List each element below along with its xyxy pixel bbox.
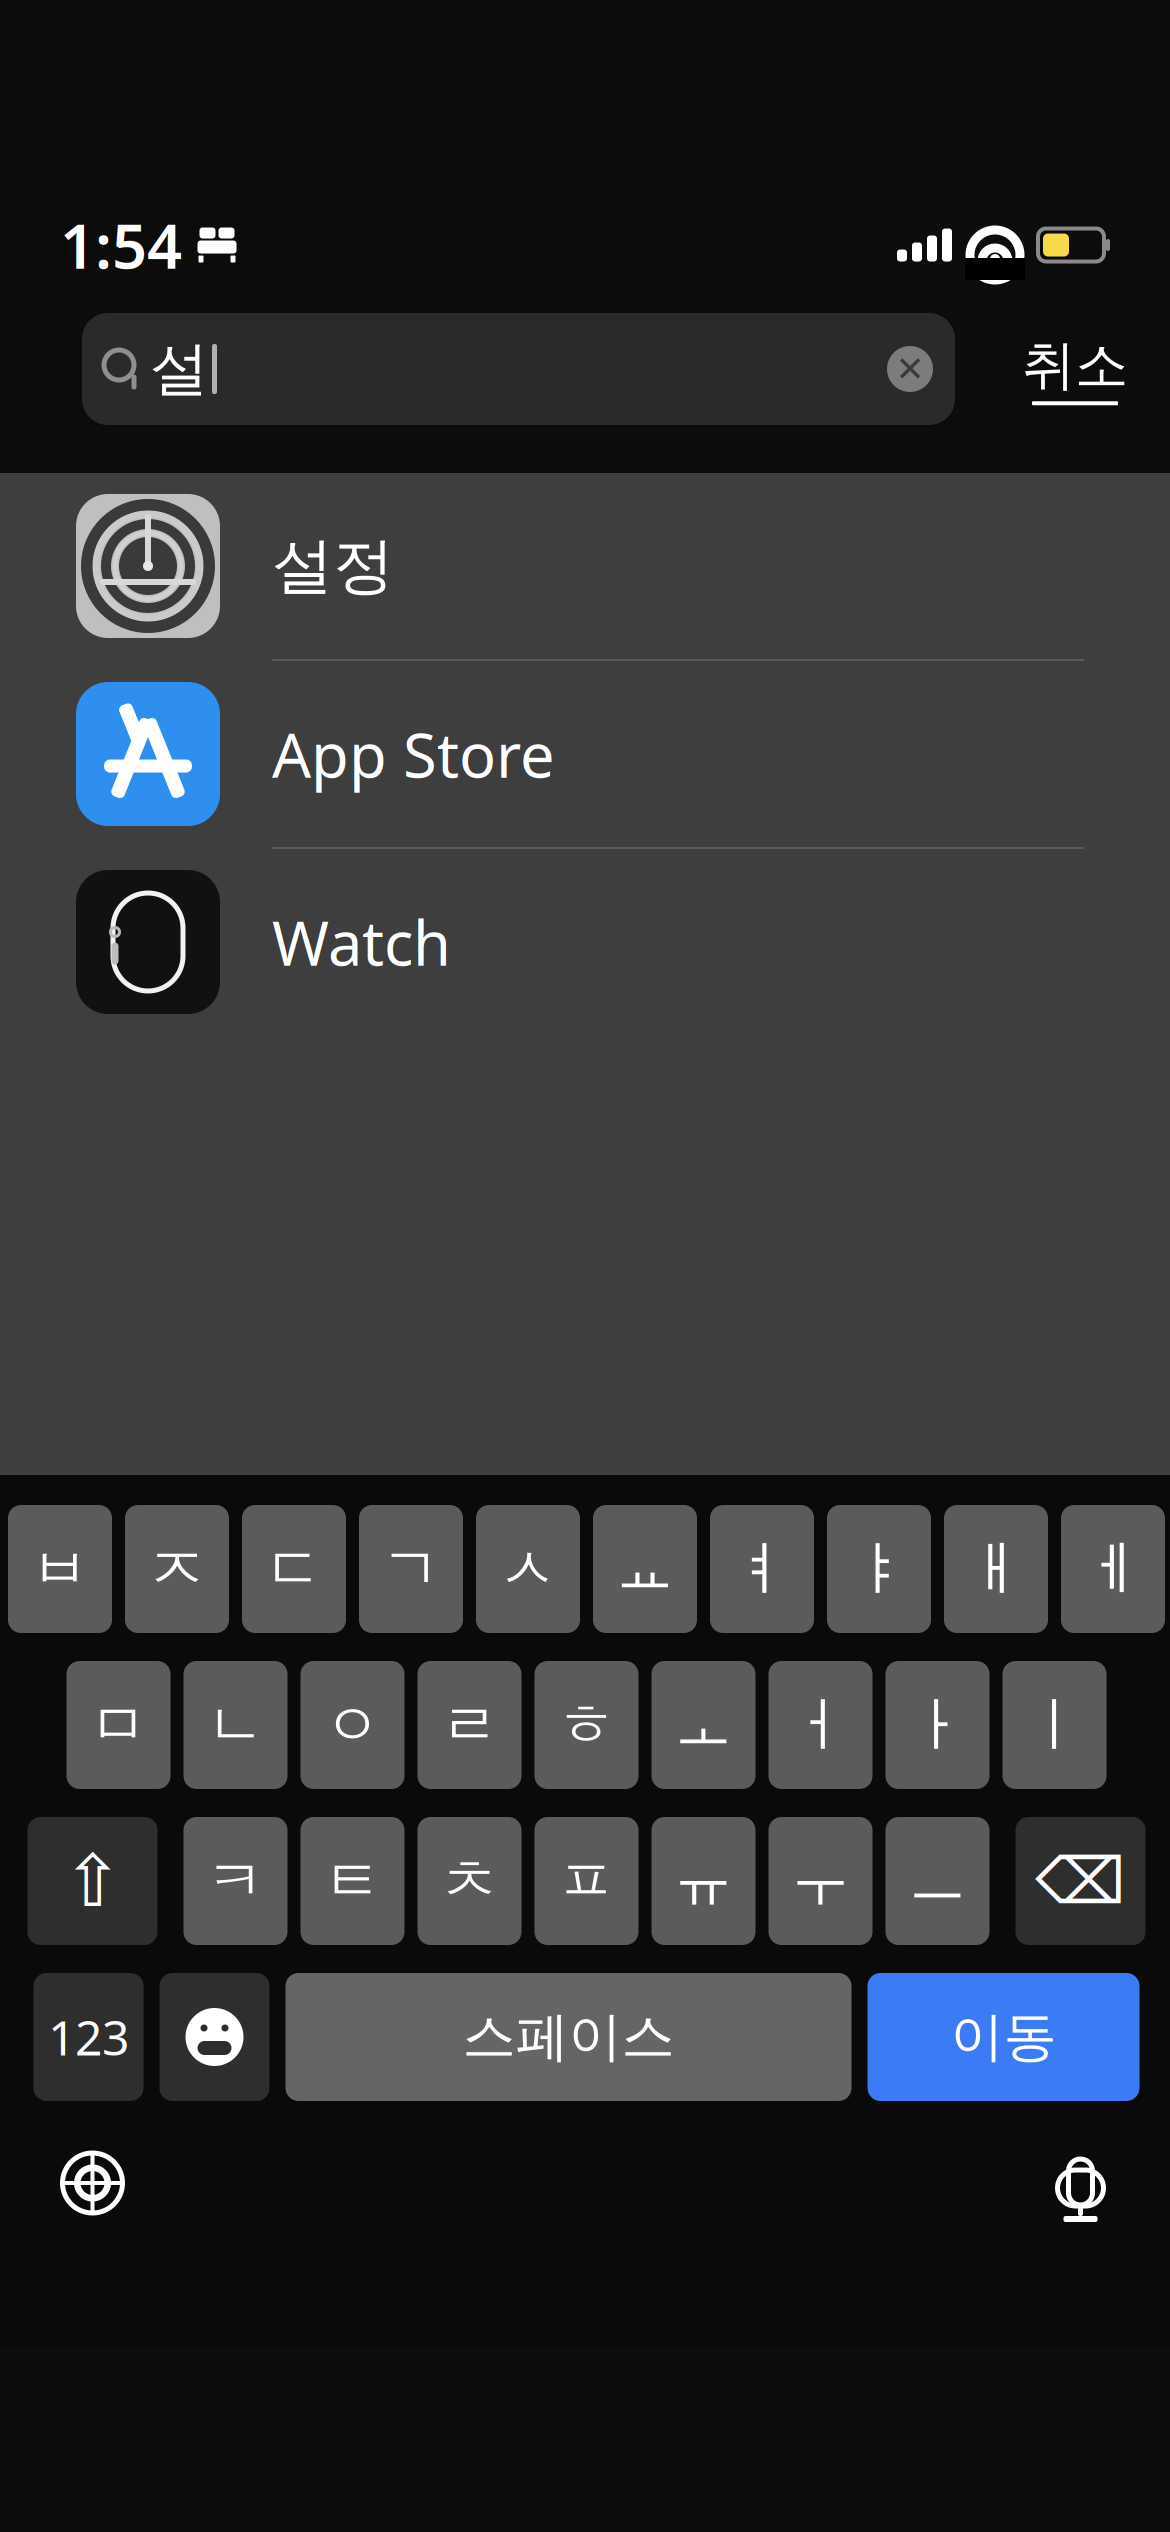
button[interactable]: ㄷ: [242, 1505, 346, 1633]
button[interactable]: ㅂ: [8, 1505, 112, 1633]
button[interactable]: ㅠ: [651, 1817, 755, 1945]
staticText: ㅑ: [849, 1533, 908, 1605]
staticText: ㅈ: [147, 1533, 206, 1605]
button[interactable]: ㄱ: [359, 1505, 463, 1633]
staticText: ㅜ: [791, 1845, 850, 1917]
staticText: ㅗ: [674, 1689, 733, 1761]
button[interactable]: ㅌ: [300, 1817, 404, 1945]
staticText: ㄷ: [264, 1533, 323, 1605]
button[interactable]: ㅐ: [944, 1505, 1048, 1633]
staticText: ✕: [895, 349, 924, 389]
button[interactable]: Emoji: [159, 1973, 269, 2101]
button[interactable]: ㅑ: [827, 1505, 931, 1633]
button[interactable]: App Store: [0, 661, 1170, 849]
button[interactable]: ㅊ: [417, 1817, 521, 1945]
button[interactable]: Next keyboard: [37, 2137, 147, 2229]
button[interactable]: ㅏ: [885, 1661, 989, 1789]
staticText: ㅇ: [323, 1689, 382, 1761]
staticText: ㅍ: [557, 1845, 616, 1917]
staticText: ㅊ: [440, 1845, 499, 1917]
staticText: 스페이스: [462, 2004, 674, 2070]
staticText: 123: [48, 2005, 129, 2069]
button[interactable]: 123: [33, 1973, 143, 2101]
button[interactable]: ㅜ: [768, 1817, 872, 1945]
button[interactable]: ㅔ: [1061, 1505, 1165, 1633]
button[interactable]: Dictation: [1025, 2137, 1135, 2229]
staticText: ㅛ: [615, 1533, 674, 1605]
button[interactable]: ㅁ: [66, 1661, 170, 1789]
button[interactable]: 취소: [1022, 333, 1128, 405]
button[interactable]: Delete: [1015, 1817, 1145, 1945]
staticText: 취소: [1022, 333, 1128, 398]
button[interactable]: Clear text: [887, 346, 955, 392]
button[interactable]: 이동: [867, 1973, 1139, 2101]
staticText: ㄹ: [440, 1689, 499, 1761]
staticText: ㅣ: [1025, 1689, 1084, 1761]
button[interactable]: ㅈ: [125, 1505, 229, 1633]
button[interactable]: ㄹ: [417, 1661, 521, 1789]
staticText: App Store: [272, 713, 555, 795]
staticText: 1:54: [60, 204, 182, 286]
button[interactable]: ㅋ: [183, 1817, 287, 1945]
staticText: ㅡ: [908, 1845, 967, 1917]
button[interactable]: ㅅ: [476, 1505, 580, 1633]
staticText: ㅅ: [498, 1533, 557, 1605]
button[interactable]: 스페이스: [285, 1973, 851, 2101]
button[interactable]: ㅇ: [300, 1661, 404, 1789]
button[interactable]: ㄴ: [183, 1661, 287, 1789]
button[interactable]: Watch: [0, 849, 1170, 1037]
staticText: ㄴ: [206, 1689, 265, 1761]
button[interactable]: ㅓ: [768, 1661, 872, 1789]
button[interactable]: ㅍ: [534, 1817, 638, 1945]
staticText: ⇧: [62, 1840, 122, 1922]
button[interactable]: ㅡ: [885, 1817, 989, 1945]
staticText: ㄱ: [381, 1533, 440, 1605]
staticText: Watch: [272, 901, 451, 983]
button[interactable]: ㅛ: [593, 1505, 697, 1633]
staticText: ㅋ: [206, 1845, 265, 1917]
staticText: ㅁ: [89, 1689, 148, 1761]
staticText: ㅠ: [674, 1845, 733, 1917]
button[interactable]: 설정: [0, 473, 1170, 661]
button[interactable]: Shift: [27, 1817, 157, 1945]
staticText: 설: [150, 333, 209, 405]
button[interactable]: ㅗ: [651, 1661, 755, 1789]
staticText: ㅂ: [30, 1533, 89, 1605]
button[interactable]: ㅕ: [710, 1505, 814, 1633]
staticText: ㅌ: [323, 1845, 382, 1917]
staticText: ㅓ: [791, 1689, 850, 1761]
staticText: ㅐ: [966, 1533, 1025, 1605]
staticText: ㅎ: [557, 1689, 616, 1761]
button[interactable]: ㅣ: [1002, 1661, 1106, 1789]
staticText: 설정: [272, 528, 394, 604]
staticText: ㅏ: [908, 1689, 967, 1761]
staticText: ㅕ: [732, 1533, 791, 1605]
button[interactable]: ㅎ: [534, 1661, 638, 1789]
staticText: 이동: [950, 2004, 1056, 2070]
staticText: ⌫: [1035, 1845, 1126, 1917]
staticText: ㅔ: [1083, 1533, 1142, 1605]
